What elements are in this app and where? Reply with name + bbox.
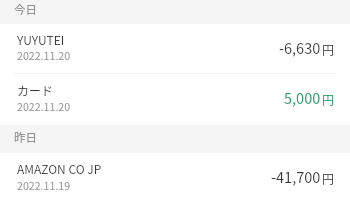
button[interactable]: AMAZON CO JP [0, 153, 350, 202]
staticText: YUYUTEI [17, 31, 65, 48]
staticText: 2022.11.20 [17, 99, 71, 114]
staticText: 円 [322, 91, 335, 108]
staticText: 昨日 [14, 129, 37, 146]
staticText: 5,000 [284, 87, 321, 108]
button[interactable]: カード [0, 74, 350, 125]
staticText: 円 [322, 41, 335, 58]
staticText: 2022.11.20 [17, 48, 71, 63]
button[interactable]: YUYUTEI [0, 24, 350, 74]
staticText: 円 [322, 170, 335, 187]
staticText: -6,630 [279, 37, 321, 58]
staticText: AMAZON CO JP [17, 160, 102, 177]
staticText: カード [17, 82, 54, 99]
staticText: -41,700 [271, 166, 321, 187]
staticText: 今日 [14, 1, 37, 18]
staticText: 2022.11.19 [17, 178, 71, 193]
